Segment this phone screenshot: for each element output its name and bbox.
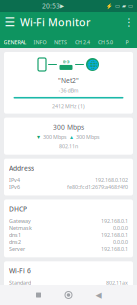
button[interactable]: More options: [121, 12, 137, 32]
button[interactable]: Home: [53, 286, 83, 304]
staticText: NETS: [54, 39, 67, 46]
button[interactable]: NETS: [50, 36, 71, 48]
staticText: 300 Mbps: [53, 123, 84, 131]
staticText: GENERAL: [3, 39, 26, 46]
staticText: 192.168.0.1: [101, 217, 128, 224]
staticText: Standard: [9, 279, 31, 286]
staticText: CH 5.0: [98, 39, 113, 46]
staticText: Netmask: [9, 224, 32, 231]
staticText: "Net2": [58, 76, 79, 85]
staticText: Wi-Fi 6: [9, 266, 31, 275]
button[interactable]: CH 5.0: [94, 36, 117, 48]
staticText: Band 6 GHz: [9, 293, 37, 300]
staticText: Server: [9, 245, 25, 252]
staticText: Wi-Fi Monitor: [20, 15, 91, 29]
staticText: dns1: [9, 231, 21, 238]
staticText: DHCP: [9, 204, 27, 213]
staticText: ◀: [95, 290, 101, 300]
staticText: Address: [9, 164, 34, 172]
staticText: IPv6: [9, 183, 20, 191]
button[interactable]: P: [117, 36, 137, 48]
staticText: IPv4: [9, 176, 20, 184]
button[interactable]: Recent apps: [23, 286, 53, 304]
staticText: ▶: [60, 3, 64, 9]
staticText: 802.11ax: [106, 279, 128, 286]
button[interactable]: INFO: [30, 36, 50, 48]
staticText: 192.168.0.102: [95, 176, 128, 184]
staticText: dns2: [9, 238, 21, 245]
staticText: CH 2.4: [75, 39, 90, 46]
staticText: 300 Mbps: [76, 133, 100, 141]
staticText: ▼: [37, 135, 40, 139]
staticText: ((•)): [63, 59, 69, 64]
staticText: 0.0.0.0: [113, 238, 128, 245]
staticText: 🌐: [86, 59, 98, 70]
button[interactable]: Back: [83, 286, 113, 304]
staticText: ⚡ ▭ ▰ ▭: [106, 3, 133, 9]
staticText: 802.11n: [59, 143, 78, 150]
staticText: 192.168.0.1: [101, 245, 128, 252]
button[interactable]: Menu: [0, 12, 20, 32]
button[interactable]: CH 2.4: [71, 36, 94, 48]
staticText: 192.168.0.1: [101, 231, 128, 238]
button[interactable]: GENERAL: [0, 36, 30, 48]
staticText: INFO: [33, 39, 46, 46]
staticText: ▲: [70, 135, 73, 139]
staticText: ⋮: [123, 16, 134, 28]
staticText: ☰: [4, 15, 15, 29]
staticText: -36 dBm: [58, 87, 78, 94]
staticText: 2412 MHz (1): [52, 102, 85, 110]
staticText: 20:53: [42, 2, 60, 10]
staticText: P: [125, 39, 128, 46]
staticText: 300 Mbps: [43, 133, 67, 141]
staticText: 0.0.0.0: [113, 224, 128, 231]
staticText: fe80::fcd1:2679:a468:f4f0: [67, 183, 128, 191]
staticText: Gateway: [9, 217, 31, 224]
